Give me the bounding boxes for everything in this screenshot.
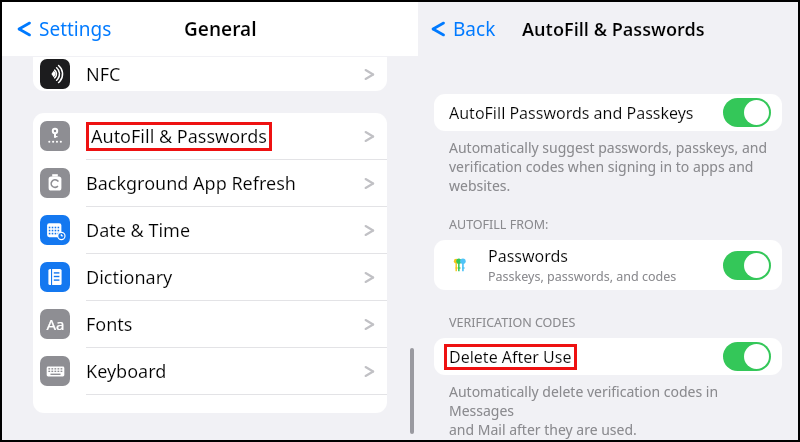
staticText: Delete After Use: [449, 346, 572, 368]
button[interactable]: AutoFill & Passwords: [33, 113, 387, 159]
button[interactable]: Settings: [12, 12, 116, 46]
button[interactable]: Date & Time: [33, 207, 387, 253]
staticText: Back: [453, 16, 496, 42]
staticText: Automatically delete verification codes …: [449, 382, 782, 439]
button[interactable]: Background App Refresh: [33, 160, 387, 206]
button[interactable]: Toggle on: [723, 98, 771, 127]
button[interactable]: NFC: [33, 57, 387, 91]
button[interactable]: Aa: [33, 301, 387, 347]
staticText: AutoFill Passwords and Passkeys: [449, 102, 694, 124]
staticText: Date & Time: [86, 218, 191, 243]
staticText: NFC: [86, 62, 121, 87]
staticText: Settings: [39, 16, 112, 42]
staticText: VERIFICATION CODES: [449, 314, 576, 331]
staticText: Automatically suggest passwords, passkey…: [449, 138, 768, 195]
button[interactable]: Toggle on: [723, 342, 771, 371]
staticText: AutoFill & Passwords: [91, 124, 267, 149]
button[interactable]: Dictionary: [33, 254, 387, 300]
staticText: Passwords: [488, 245, 569, 267]
button[interactable]: Delete After Use: [434, 338, 782, 375]
staticText: Fonts: [86, 312, 133, 337]
button[interactable]: AutoFill Passwords and Passkeys: [434, 94, 782, 131]
staticText: Keyboard: [86, 359, 167, 384]
staticText: AUTOFILL FROM:: [449, 216, 549, 233]
staticText: Aa: [46, 314, 65, 334]
button[interactable]: Back: [426, 12, 500, 46]
staticText: AutoFill & Passwords: [522, 17, 705, 42]
staticText: Background App Refresh: [86, 171, 296, 196]
staticText: Dictionary: [86, 265, 173, 290]
button[interactable]: Keyboard: [33, 348, 387, 394]
staticText: General: [184, 16, 257, 42]
button[interactable]: Passwords: [434, 240, 782, 290]
button[interactable]: Toggle on: [723, 251, 771, 280]
staticText: Passkeys, passwords, and codes: [488, 268, 677, 285]
